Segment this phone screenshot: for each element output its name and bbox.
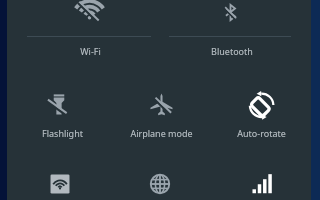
button[interactable]: Signal strength bbox=[237, 166, 285, 200]
staticText: Auto-rotate bbox=[237, 127, 286, 139]
button[interactable]: Airplane mode bbox=[137, 86, 185, 122]
button[interactable]: Auto-rotate bbox=[237, 87, 285, 123]
button[interactable]: Mobile data bbox=[136, 166, 184, 200]
button[interactable]: Hotspot bbox=[36, 166, 84, 200]
button[interactable]: Bluetooth bbox=[206, 0, 254, 30]
staticText: Flashlight bbox=[42, 127, 83, 139]
staticText: Bluetooth bbox=[211, 45, 253, 57]
button[interactable]: Wi-Fi bbox=[65, 0, 113, 26]
staticText: Airplane mode bbox=[130, 127, 193, 139]
button[interactable]: Flashlight bbox=[35, 86, 83, 122]
staticText: Wi-Fi bbox=[80, 45, 101, 57]
